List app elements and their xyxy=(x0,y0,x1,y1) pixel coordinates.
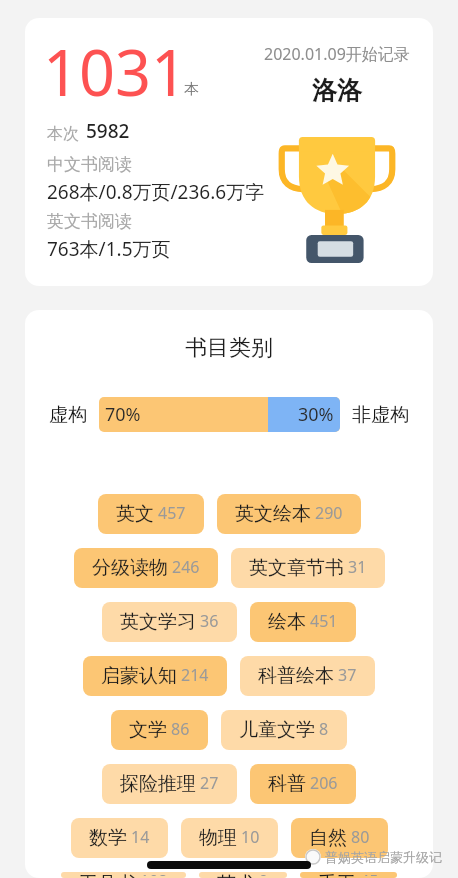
staticText: 绘本 xyxy=(268,610,306,634)
staticText: 27 xyxy=(200,772,219,794)
staticText: 5982 xyxy=(86,118,130,144)
button[interactable]: 启蒙认知 xyxy=(83,656,227,696)
staticText: 1031 xyxy=(43,29,188,115)
staticText: 290 xyxy=(315,502,343,524)
staticText: 30% xyxy=(298,402,334,427)
staticText: 科普绘本 xyxy=(258,664,334,688)
staticText: 268本/0.8万页/236.6万字 xyxy=(47,179,265,205)
button[interactable]: 文学 xyxy=(111,710,208,750)
button[interactable]: 英文绘本 xyxy=(217,494,361,534)
staticText: 书目类别 xyxy=(25,334,433,362)
staticText: 分级读物 xyxy=(92,556,168,580)
staticText: 451 xyxy=(310,610,338,632)
button[interactable]: 工具书 xyxy=(61,872,186,878)
staticText: 763本/1.5万页 xyxy=(47,236,171,262)
button[interactable]: 艺术 xyxy=(199,872,287,878)
staticText: 物理 xyxy=(199,826,237,850)
staticText: 108 xyxy=(140,872,168,876)
staticText: 洛洛 xyxy=(312,75,362,106)
staticText: 非虚构 xyxy=(352,403,409,427)
button[interactable]: 绘本 xyxy=(250,602,356,642)
staticText: 9 xyxy=(259,872,269,876)
staticText: 儿童文学 xyxy=(239,718,315,742)
button[interactable]: 英文 xyxy=(98,494,204,534)
button[interactable]: 数学 xyxy=(71,818,168,858)
staticText: 45 xyxy=(360,872,379,876)
staticText: 数学 xyxy=(89,826,127,850)
staticText: 70% xyxy=(105,402,141,427)
staticText: 工具书 xyxy=(79,872,136,878)
staticText: 英文章节书 xyxy=(249,556,344,580)
staticText: 457 xyxy=(158,502,186,524)
button[interactable]: 分级读物 xyxy=(74,548,218,588)
staticText: 文学 xyxy=(129,718,167,742)
staticText: 自然 xyxy=(309,826,347,850)
staticText: 246 xyxy=(172,556,200,578)
staticText: 英文学习 xyxy=(120,610,196,634)
staticText: 本 xyxy=(184,80,199,99)
staticText: 英文绘本 xyxy=(235,502,311,526)
staticText: 启蒙认知 xyxy=(101,664,177,688)
button[interactable]: 科普绘本 xyxy=(240,656,375,696)
staticText: 本次 xyxy=(47,124,79,144)
button[interactable]: 儿童文学 xyxy=(221,710,347,750)
staticText: 37 xyxy=(338,664,357,686)
staticText: 普娲英语启蒙升级记 xyxy=(325,849,442,865)
staticText: 科普 xyxy=(268,772,306,796)
button[interactable]: 英文学习 xyxy=(102,602,237,642)
staticText: 86 xyxy=(171,718,190,740)
staticText: 214 xyxy=(181,664,209,686)
staticText: 36 xyxy=(200,610,219,632)
staticText: 14 xyxy=(131,826,150,848)
button[interactable]: 物理 xyxy=(181,818,278,858)
staticText: 手工 xyxy=(318,872,356,878)
staticText: 2020.01.09开始记录 xyxy=(264,43,410,65)
staticText: 英文 xyxy=(116,502,154,526)
staticText: 206 xyxy=(310,772,338,794)
staticText: 英文书阅读 xyxy=(47,211,132,232)
button[interactable]: 手工 xyxy=(300,872,397,878)
button[interactable]: 科普 xyxy=(250,764,356,804)
staticText: 探险推理 xyxy=(120,772,196,796)
staticText: 中文书阅读 xyxy=(47,154,132,175)
button[interactable]: 英文章节书 xyxy=(231,548,385,588)
staticText: 80 xyxy=(351,826,370,848)
staticText: 艺术 xyxy=(217,872,255,878)
staticText: 虚构 xyxy=(49,403,87,427)
button[interactable]: 探险推理 xyxy=(102,764,237,804)
staticText: 8 xyxy=(319,718,329,740)
button[interactable]: 自然 xyxy=(291,818,388,858)
staticText: 10 xyxy=(241,826,260,848)
staticText: 31 xyxy=(348,556,367,578)
